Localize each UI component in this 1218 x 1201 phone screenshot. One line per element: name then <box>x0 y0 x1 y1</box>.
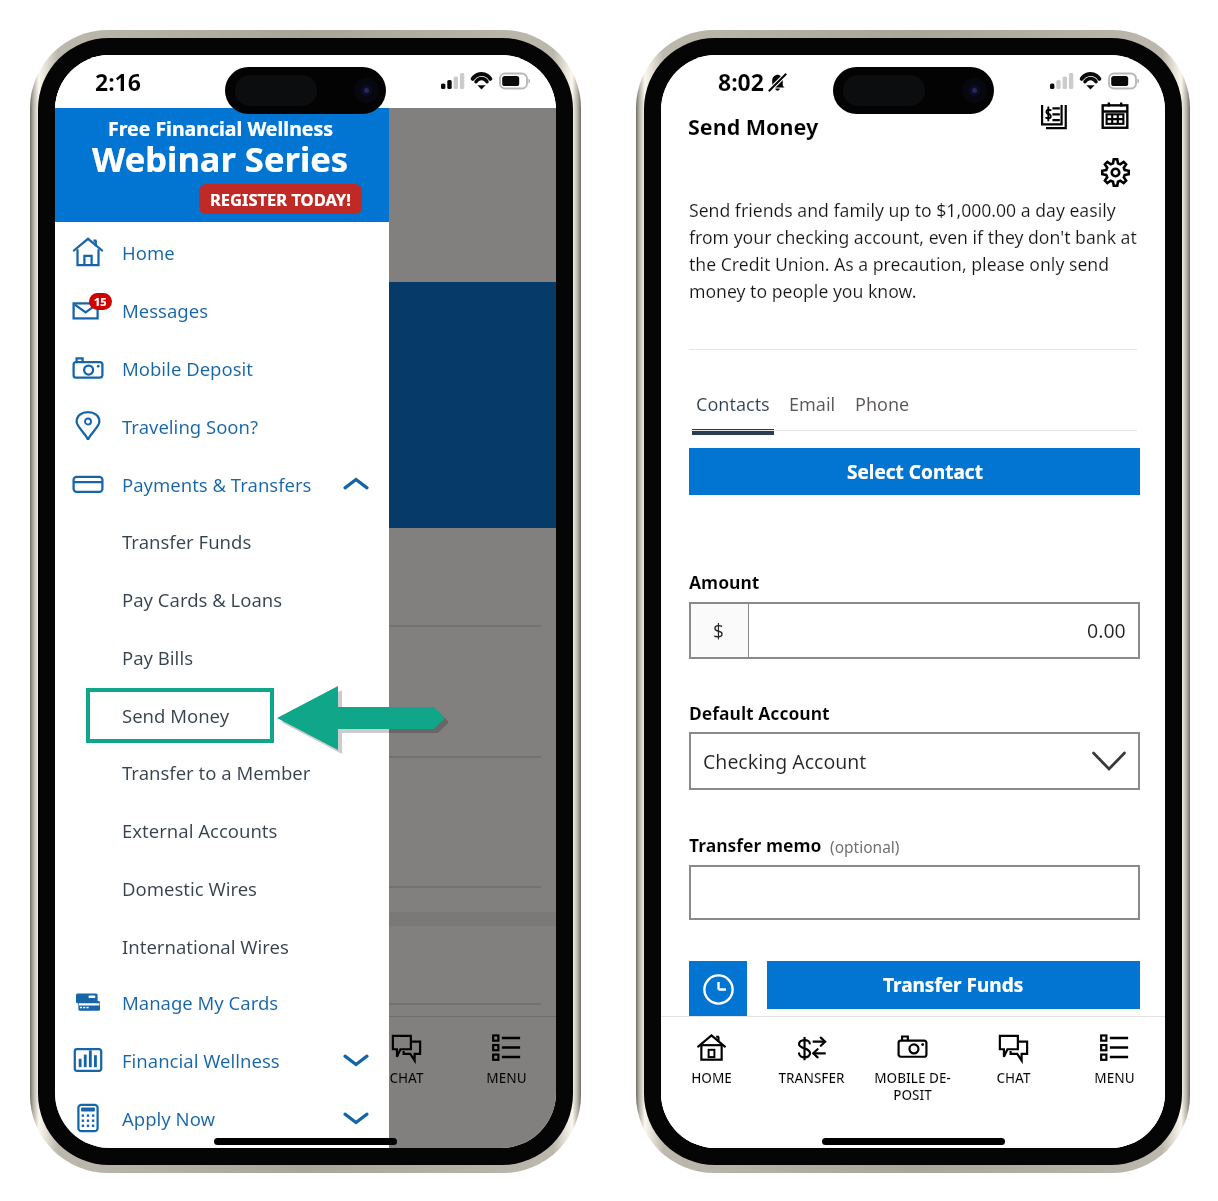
button[interactable]: Settings <box>1101 158 1130 187</box>
button[interactable]: CHAT <box>963 1017 1064 1105</box>
staticText: HOME <box>691 1069 732 1087</box>
button[interactable]: Payments & Transfers <box>55 455 389 513</box>
button[interactable]: HOME <box>661 1017 761 1105</box>
button[interactable]: MENU <box>456 1017 556 1105</box>
button[interactable]: Domestic Wires <box>55 859 389 917</box>
staticText: MOBILE DE- POSIT <box>874 1069 951 1104</box>
button[interactable]: Contacts <box>692 392 774 435</box>
staticText: 0.00 <box>1087 617 1126 644</box>
button[interactable]: Financial Wellness <box>55 1031 389 1089</box>
button[interactable]: Traveling Soon? <box>55 397 389 455</box>
button[interactable]: Transfer to a Member <box>55 743 389 801</box>
staticText: Transfer Funds <box>122 529 252 554</box>
button[interactable]: Scheduled transfers <box>689 961 747 1017</box>
staticText: Manage My Cards <box>122 990 279 1015</box>
staticText: from your checking account, even if they… <box>689 225 1137 252</box>
staticText: CHAT <box>996 1069 1031 1087</box>
staticText: Pay Bills <box>122 645 194 670</box>
staticText: Free Financial Wellness <box>108 115 334 142</box>
button[interactable]: Statements <box>1040 103 1066 129</box>
staticText: 2:16 <box>95 66 141 97</box>
staticText: 15 <box>94 294 107 309</box>
button[interactable]: HOME <box>55 1017 156 1105</box>
button[interactable]: Send Money <box>55 686 389 744</box>
button[interactable]: TRANSFER <box>156 1017 256 1105</box>
button[interactable]: International Wires <box>55 917 389 975</box>
staticText: Financial Wellness <box>122 1048 280 1073</box>
staticText: Send Money <box>688 112 819 141</box>
staticText: Home <box>122 240 175 265</box>
staticText: Select Contact <box>847 459 983 485</box>
button[interactable]: CHAT <box>356 1017 456 1105</box>
staticText: Amount <box>689 570 760 594</box>
staticText: Messages <box>122 298 208 323</box>
button[interactable]: Manage My Cards <box>55 973 389 1031</box>
staticText: Phone <box>855 392 910 417</box>
staticText: Payments & Transfers <box>122 472 312 497</box>
staticText: Traveling Soon? <box>122 414 259 439</box>
button[interactable]: Phone <box>851 392 914 435</box>
button[interactable]: MENU <box>1064 1017 1165 1105</box>
button[interactable]: Home <box>55 223 389 281</box>
staticText: (optional) <box>822 836 900 857</box>
button[interactable]: Calendar <box>1101 102 1129 130</box>
button[interactable]: Checking Account <box>689 732 1140 790</box>
button[interactable]: Apply Now <box>55 1089 389 1147</box>
staticText: Default Account <box>689 701 830 725</box>
staticText: Mobile Deposit <box>122 356 253 381</box>
staticText: MENU <box>1094 1069 1135 1087</box>
button[interactable]: MOBILE DE- POSIT <box>862 1017 963 1105</box>
staticText: money to people you know. <box>689 279 917 306</box>
staticText: MENU <box>486 1069 527 1087</box>
button[interactable]: TRANSFER <box>761 1017 862 1105</box>
staticText: REGISTER TODAY! <box>210 188 351 210</box>
staticText: Transfer to a Member <box>122 760 311 785</box>
button[interactable]: Transfer Funds <box>767 961 1140 1009</box>
button[interactable]: REGISTER TODAY! <box>210 188 351 210</box>
staticText: 8:02 <box>718 66 764 97</box>
button[interactable]: 15 <box>55 281 389 339</box>
staticText: Transfer Funds <box>883 972 1024 998</box>
staticText: CHAT <box>389 1069 424 1087</box>
staticText: Contacts <box>696 392 770 417</box>
staticText: Transfer memo <box>689 833 822 857</box>
button[interactable]: Email <box>785 392 840 435</box>
staticText: the Credit Union. As a precaution, pleas… <box>689 252 1110 279</box>
button[interactable]: MOBILE DE- POSIT <box>256 1017 356 1105</box>
staticText: Checking Account <box>703 748 867 775</box>
staticText: TRANSFER <box>778 1069 845 1087</box>
button[interactable]: External Accounts <box>55 801 389 859</box>
staticText: International Wires <box>122 934 289 959</box>
staticText: Send friends and family up to $1,000.00 … <box>689 198 1116 225</box>
staticText: Apply Now <box>122 1106 216 1131</box>
staticText: HOME <box>85 1069 126 1087</box>
staticText: Webinar Series <box>92 135 349 182</box>
staticText: $ <box>713 618 724 644</box>
button[interactable]: Pay Cards & Loans <box>55 570 389 628</box>
button[interactable]: Pay Bills <box>55 628 389 686</box>
staticText: External Accounts <box>122 818 278 843</box>
staticText: Domestic Wires <box>122 876 257 901</box>
staticText: Send Money <box>122 703 230 728</box>
button[interactable]: Transfer Funds <box>55 512 389 570</box>
staticText: Pay Cards & Loans <box>122 587 283 612</box>
button[interactable]: Select Contact <box>689 448 1140 495</box>
staticText: Email <box>789 392 836 417</box>
button[interactable]: Mobile Deposit <box>55 339 389 397</box>
